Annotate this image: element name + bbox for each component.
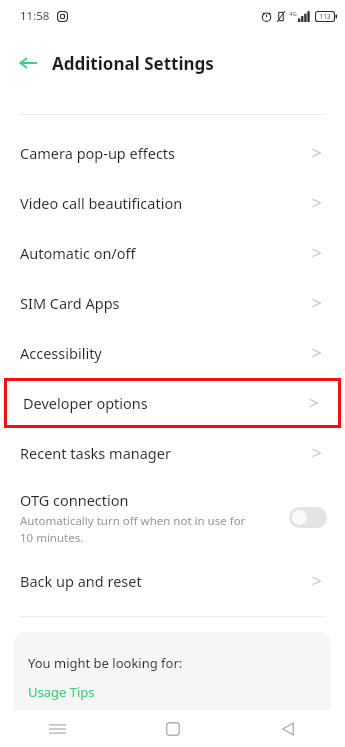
staticText: Accessibility [20,343,102,363]
button[interactable]: Back [10,45,46,81]
button[interactable]: Recent apps [0,710,115,747]
staticText: Video call beautification [20,193,183,213]
button[interactable]: Accessibility [0,328,345,378]
button[interactable]: Camera pop-up effects [0,128,345,178]
button[interactable]: Recent tasks manager [0,428,345,478]
staticText: Recent tasks manager [20,443,171,463]
staticText: Automatic on/off [20,243,136,263]
staticText: Additional Settings [52,52,214,75]
staticText: 113 [319,12,331,21]
button[interactable]: Back up and reset [0,556,345,606]
button[interactable]: OTG connection [0,478,345,556]
staticText: Camera pop-up effects [20,143,176,163]
button[interactable]: SIM Card Apps [0,278,345,328]
button[interactable]: OTG connection toggle, off [289,507,327,528]
staticText: Automatically turn off when not in use f… [20,513,253,545]
staticText: SIM Card Apps [20,293,120,313]
button[interactable]: Home [115,710,230,747]
button[interactable]: Automatic on/off [0,228,345,278]
staticText: 4G [289,10,297,18]
button[interactable]: Usage Tips [28,683,95,701]
staticText: Back up and reset [20,571,142,591]
button[interactable]: Developer options [7,381,338,425]
button[interactable]: Video call beautification [0,178,345,228]
staticText: OTG connection [20,490,129,510]
staticText: Usage Tips [28,683,95,701]
staticText: 11:58 [20,8,50,24]
staticText: You might be looking for: [28,654,183,672]
staticText: Developer options [23,393,306,413]
button[interactable]: Back [230,710,345,747]
